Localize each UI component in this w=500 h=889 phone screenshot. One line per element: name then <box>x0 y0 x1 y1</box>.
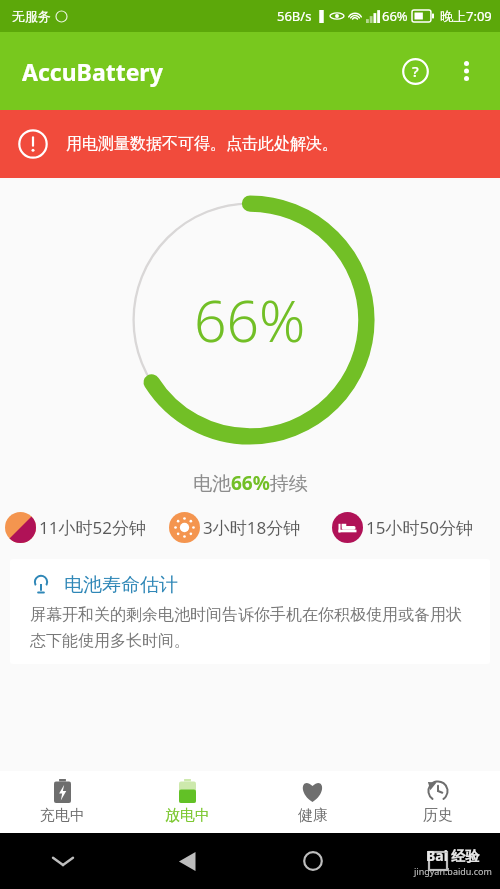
staticText: 用电测量数据不可得。点击此处解决。 <box>66 134 338 154</box>
staticText: 历史 <box>423 806 453 825</box>
staticText: 健康 <box>298 806 328 825</box>
staticText: 66% <box>382 7 408 25</box>
button[interactable]: Help <box>392 48 438 94</box>
button[interactable]: Back <box>125 833 250 889</box>
staticText: 放电中 <box>165 806 210 825</box>
button[interactable]: Hide keyboard <box>0 833 125 889</box>
staticText: ? <box>412 61 419 81</box>
staticText: Bai 经验 <box>426 846 480 865</box>
staticText: 3小时18分钟 <box>203 516 301 539</box>
staticText: 无服务 <box>12 8 51 24</box>
button[interactable]: More options <box>444 49 488 93</box>
staticText: 晚上7:09 <box>440 7 492 25</box>
staticText: AccuBattery <box>22 56 163 87</box>
staticText: 15小时50分钟 <box>366 516 473 539</box>
button[interactable]: 15小时50分钟 <box>332 512 495 543</box>
staticText: 66% <box>194 281 306 359</box>
button[interactable]: 用电测量数据不可得。点击此处解决。 <box>0 110 500 178</box>
staticText: 电池寿命估计 <box>64 573 178 597</box>
staticText: 电池66%持续 <box>193 470 308 496</box>
staticText: 56B/s <box>277 7 312 25</box>
button[interactable]: 充电中 <box>0 771 125 833</box>
button[interactable]: 3小时18分钟 <box>169 512 332 543</box>
button[interactable]: 11小时52分钟 <box>5 512 169 543</box>
button[interactable]: 电池寿命估计 <box>10 559 490 664</box>
button[interactable]: 历史 <box>375 771 500 833</box>
button[interactable]: 健康 <box>250 771 375 833</box>
staticText: 充电中 <box>40 806 85 825</box>
button[interactable]: 放电中 <box>125 771 250 833</box>
staticText: jingyan.baidu.com <box>414 865 492 877</box>
staticText: 11小时52分钟 <box>39 516 146 539</box>
button[interactable]: Home <box>250 833 375 889</box>
staticText: 屏幕开和关的剩余电池时间告诉你手机在你积极使用或备用状态下能使用多长时间。 <box>30 605 474 650</box>
button[interactable]: Recent apps <box>375 833 500 889</box>
